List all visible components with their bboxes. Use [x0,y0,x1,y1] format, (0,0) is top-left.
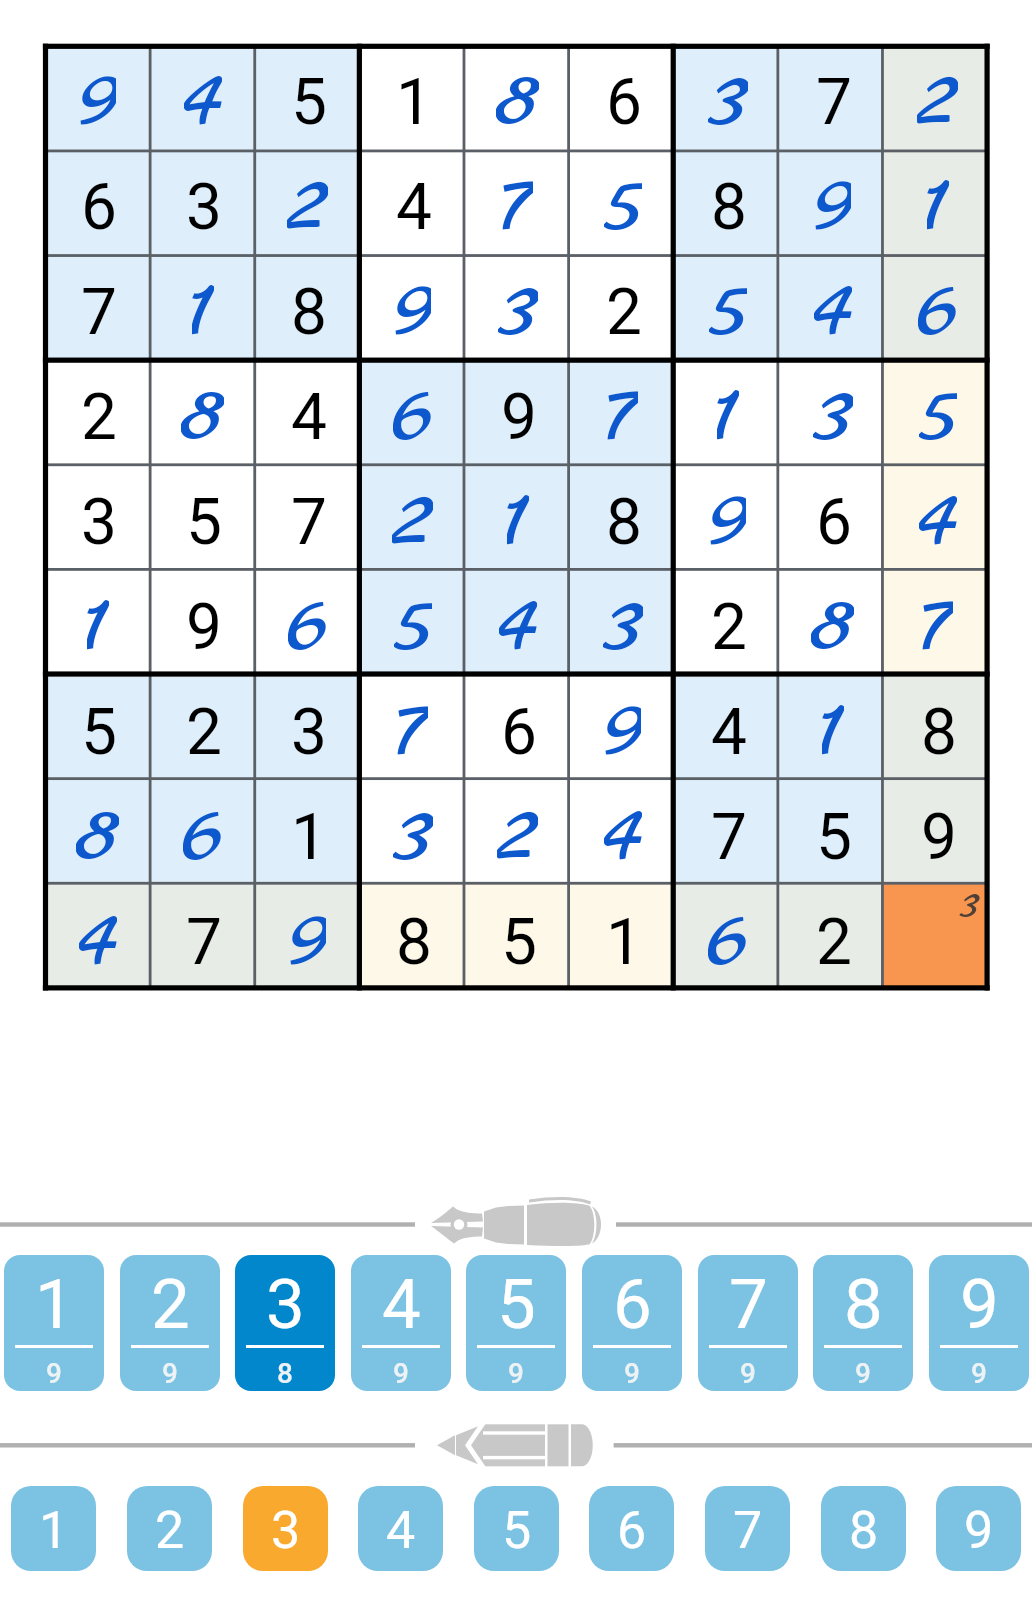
button[interactable]: 5 [474,1486,559,1571]
button[interactable]: cell 6 [361,361,466,466]
button[interactable]: 9 [929,1255,1029,1391]
button[interactable]: cell 5 [46,676,151,781]
button[interactable]: cell 2 [886,46,991,151]
button[interactable]: cell 3 [781,361,886,466]
button[interactable]: cell 5 [571,151,676,256]
button[interactable]: 2 [120,1255,220,1391]
button[interactable]: cell 1 [781,676,886,781]
button[interactable]: 7 [698,1255,798,1391]
button[interactable]: cell 9 [886,781,991,886]
button[interactable]: cell 5 [466,886,571,991]
button[interactable]: cell 1 [361,46,466,151]
button[interactable]: cell 7 [361,676,466,781]
button[interactable]: cell 3 [466,256,571,361]
button[interactable]: cell 4 [676,676,781,781]
button[interactable]: cell 6 [886,256,991,361]
button[interactable]: cell 7 [676,781,781,886]
button[interactable]: cell 6 [151,781,256,886]
button[interactable]: cell 8 [571,466,676,571]
button[interactable]: 8 [821,1486,906,1571]
button[interactable]: cell 3 [676,46,781,151]
button[interactable]: cell 1 [46,571,151,676]
button[interactable]: cell 2 [676,571,781,676]
button[interactable]: cell 2 [361,466,466,571]
button[interactable]: Pen mode [0,1190,1032,1260]
button[interactable]: cell 7 [46,256,151,361]
button[interactable]: cell 6 [781,466,886,571]
button[interactable]: 9 [936,1486,1021,1571]
button[interactable]: cell 3 [256,676,361,781]
button[interactable]: cell 1 [466,466,571,571]
button[interactable]: cell 4 [151,46,256,151]
button[interactable]: cell 4 [781,256,886,361]
button[interactable]: cell 2 [781,886,886,991]
button[interactable]: cell 2 [256,151,361,256]
button[interactable]: cell 5 [151,466,256,571]
button[interactable]: cell 9 [676,466,781,571]
button[interactable]: cell 4 [571,781,676,886]
button[interactable]: cell 3 [151,151,256,256]
button[interactable]: cell 2 [46,361,151,466]
button[interactable]: 4 [351,1255,451,1391]
button[interactable]: 3 [235,1255,335,1391]
button[interactable]: 7 [705,1486,790,1571]
button[interactable]: cell 2 [571,256,676,361]
button[interactable]: cell 6 [256,571,361,676]
button[interactable]: cell 5 [781,781,886,886]
button[interactable]: cell 1 [256,781,361,886]
button[interactable]: 3 [243,1486,328,1571]
button[interactable]: cell 6 [571,46,676,151]
button[interactable]: cell 8 [151,361,256,466]
button[interactable]: cell 1 [676,361,781,466]
button[interactable]: cell 9 [256,886,361,991]
button[interactable]: cell 5 [886,361,991,466]
button[interactable]: cell 7 [571,361,676,466]
button[interactable]: cell 6 [46,151,151,256]
button[interactable]: cell 4 [886,466,991,571]
button[interactable]: 6 [582,1255,682,1391]
button[interactable]: cell 3 [571,571,676,676]
button[interactable]: cell 8 [466,46,571,151]
button[interactable]: cell 7 [781,46,886,151]
button[interactable]: cell 6 [466,676,571,781]
button[interactable]: cell 6 [676,886,781,991]
button[interactable]: cell 9 [361,256,466,361]
button[interactable]: cell 1 [886,151,991,256]
button[interactable]: Pencil (notes) mode [0,1410,1032,1480]
button[interactable]: cell 8 [886,676,991,781]
button[interactable]: 6 [589,1486,674,1571]
button[interactable]: 2 [127,1486,212,1571]
button[interactable]: cell 8 [781,571,886,676]
button[interactable]: 8 [813,1255,913,1391]
button[interactable]: cell 3 [361,781,466,886]
button[interactable]: cell 3 [46,466,151,571]
button[interactable]: 5 [466,1255,566,1391]
button[interactable]: cell 4 [46,886,151,991]
button[interactable]: cell 9 [571,676,676,781]
button[interactable]: cell 5 [256,46,361,151]
button[interactable]: 1 [11,1486,96,1571]
button[interactable]: cell 2 [466,781,571,886]
button[interactable]: cell 4 [361,151,466,256]
button[interactable]: cell 4 [466,571,571,676]
button[interactable]: cell 8 [46,781,151,886]
button[interactable]: cell 7 [466,151,571,256]
button[interactable]: cell 9 [781,151,886,256]
button[interactable]: 4 [358,1486,443,1571]
button[interactable]: cell 9 [466,361,571,466]
button[interactable]: cell 4 [256,361,361,466]
button[interactable]: selected cell, note 3 [886,886,991,991]
button[interactable]: cell 2 [151,676,256,781]
button[interactable]: cell 7 [886,571,991,676]
button[interactable]: cell 8 [676,151,781,256]
button[interactable]: cell 9 [46,46,151,151]
button[interactable]: cell 5 [676,256,781,361]
button[interactable]: cell 9 [151,571,256,676]
button[interactable]: cell 8 [256,256,361,361]
button[interactable]: cell 7 [256,466,361,571]
button[interactable]: cell 1 [151,256,256,361]
button[interactable]: 1 [4,1255,104,1391]
button[interactable]: cell 7 [151,886,256,991]
button[interactable]: cell 8 [361,886,466,991]
button[interactable]: cell 1 [571,886,676,991]
